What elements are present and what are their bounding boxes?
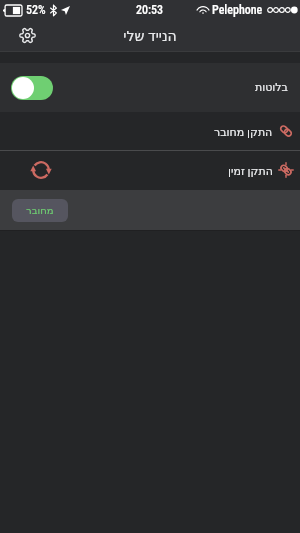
button[interactable]: Refresh (30, 159, 52, 181)
staticText: התקן מחובר (214, 124, 273, 139)
button[interactable]: מחובר (12, 199, 68, 222)
button[interactable]: Bluetooth toggle (11, 76, 53, 100)
button[interactable]: Settings (14, 22, 40, 48)
staticText: התקן זמין (228, 163, 273, 178)
staticText: Pelephone (212, 3, 263, 17)
staticText: 52% (26, 3, 46, 17)
button[interactable]: בלוטות (0, 63, 300, 112)
staticText: בלוטות (255, 81, 288, 94)
button[interactable]: התקן מחובר (0, 112, 300, 150)
staticText: 20:53 (136, 3, 164, 17)
staticText: מחובר (26, 205, 54, 217)
staticText: הנייד שלי (123, 26, 177, 45)
button[interactable]: התקן זמין (0, 151, 300, 189)
